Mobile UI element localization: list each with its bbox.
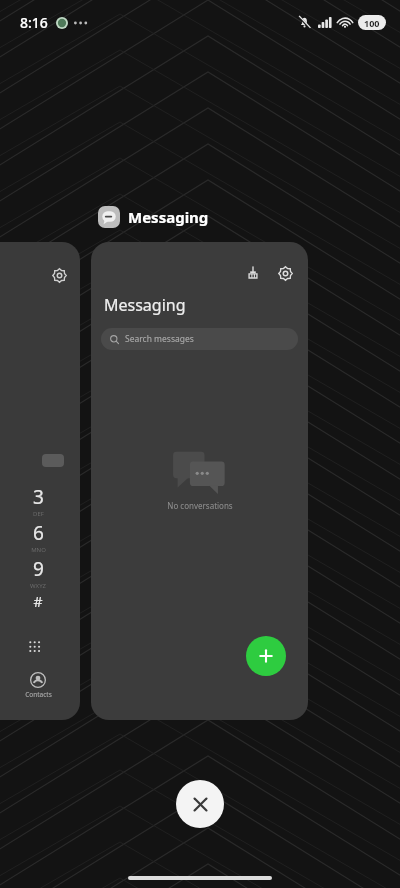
button[interactable]: 6 [18,520,58,554]
staticText: Messaging [128,207,209,227]
staticText: Search messages [125,333,194,345]
button[interactable]: Contacts [12,672,64,699]
button[interactable]: 9 [18,556,58,590]
staticText: No conversations [167,500,233,511]
staticText: MNO [31,546,46,554]
button[interactable]: Dialer settings [0,242,80,720]
button[interactable]: # [18,592,58,611]
button[interactable]: 3 [18,484,58,518]
staticText: WXYZ [30,582,46,590]
button[interactable]: Keypad [24,636,48,660]
button[interactable]: New conversation [246,636,286,676]
button[interactable]: Settings [274,262,296,284]
staticText: Messaging [104,294,186,316]
staticText: 100 [364,17,380,29]
button[interactable]: Messaging [98,206,209,228]
staticText: 3 [33,484,44,510]
button[interactable]: Clean up [242,262,264,284]
staticText: DEF [33,510,44,518]
staticText: # [33,592,43,611]
button[interactable]: Clean up [91,242,308,720]
staticText: 8:16 [20,13,48,32]
button[interactable]: Close all [176,780,224,828]
other: Backspace [42,454,64,467]
button[interactable]: Dialer settings [48,264,70,286]
staticText: 9 [33,556,44,582]
staticText: 6 [33,520,44,546]
button[interactable]: Search messages [101,328,298,350]
staticText: Contacts [25,690,52,699]
